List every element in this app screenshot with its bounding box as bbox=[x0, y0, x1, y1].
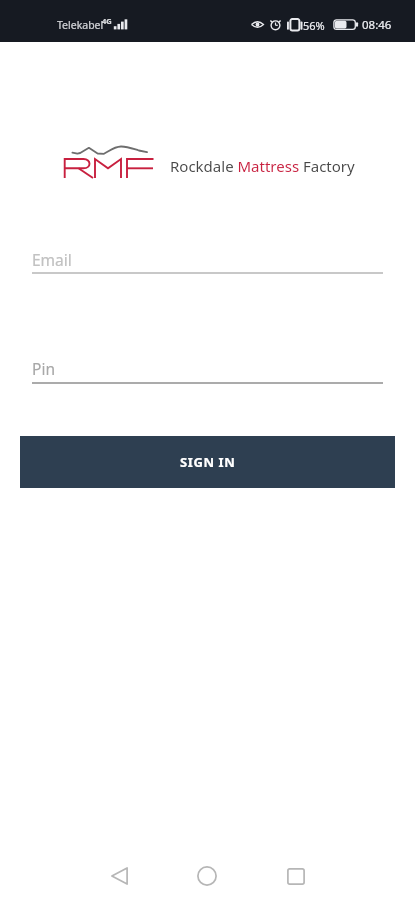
staticText: Pin bbox=[32, 358, 55, 379]
button[interactable]: SIGN IN bbox=[20, 436, 395, 488]
staticText: 56% bbox=[303, 18, 325, 33]
button[interactable]: Home bbox=[183, 856, 231, 896]
staticText: Rockdale Mattress Factory bbox=[170, 156, 355, 176]
button[interactable]: Recents bbox=[272, 856, 320, 896]
staticText: SIGN IN bbox=[180, 453, 236, 471]
button[interactable]: Pin bbox=[32, 358, 383, 379]
button[interactable]: Email bbox=[32, 249, 383, 270]
staticText: 08:46 bbox=[362, 17, 392, 33]
button[interactable]: Back bbox=[95, 856, 143, 896]
staticText: 4G bbox=[102, 16, 112, 26]
staticText: Email bbox=[32, 249, 72, 270]
staticText: Telekabel bbox=[57, 18, 104, 32]
